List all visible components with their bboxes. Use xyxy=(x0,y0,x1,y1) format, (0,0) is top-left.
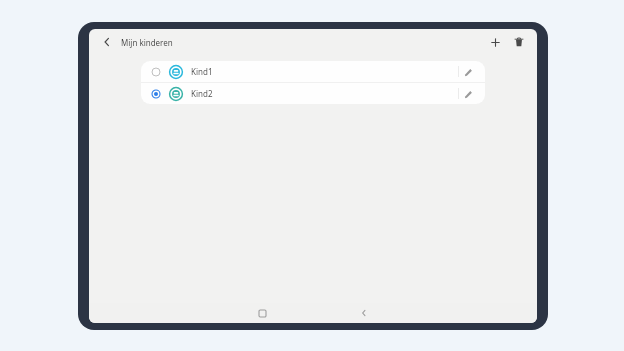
staticText: Kind1 xyxy=(191,66,213,77)
button[interactable]: Home xyxy=(253,304,271,322)
button[interactable]: Delete xyxy=(509,32,529,52)
staticText: Kind2 xyxy=(191,88,213,99)
button[interactable]: Edit Kind2 xyxy=(459,85,477,103)
button[interactable]: Kind1 xyxy=(141,61,485,82)
button[interactable]: Add child xyxy=(485,32,505,52)
button[interactable]: Kind2 xyxy=(141,83,485,104)
button[interactable]: Back xyxy=(97,32,117,52)
button[interactable]: Edit Kind1 xyxy=(459,63,477,81)
button[interactable]: Back xyxy=(355,304,373,322)
staticText: Mijn kinderen xyxy=(121,37,173,48)
